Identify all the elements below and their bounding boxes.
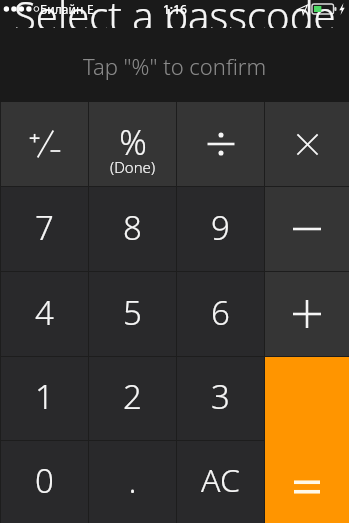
staticText: 9 [211,205,230,250]
button[interactable]: Plus [265,272,349,356]
staticText: Tap "%" to confirm [83,51,267,81]
staticText: 7 [35,205,54,250]
button[interactable]: 6 [177,272,264,356]
button[interactable]: 7 [1,187,88,271]
staticText: 1 [35,374,54,419]
staticText: Билайн [40,1,84,17]
staticText: 5 [123,290,142,335]
staticText: (Done) [110,157,156,177]
button[interactable]: 4 [1,272,88,356]
button[interactable]: 5 [89,272,176,356]
button[interactable]: . [89,441,176,523]
button[interactable]: 9 [177,187,264,271]
button[interactable]: 3 [177,357,264,440]
staticText: 2 [123,374,142,419]
button[interactable]: 1 [1,357,88,440]
staticText: AC [201,458,240,502]
button[interactable]: Plus minus [1,102,88,186]
staticText: E [87,1,94,17]
button[interactable]: 8 [89,187,176,271]
staticText: 4 [35,290,54,335]
button[interactable]: AC [177,441,264,523]
staticText: 0 [35,458,54,503]
button[interactable]: % [89,102,176,186]
staticText: 6 [211,290,230,335]
button[interactable]: Divide [177,102,264,186]
button[interactable]: 2 [89,357,176,440]
staticText: % [119,119,147,165]
staticText: Select a passcode [14,0,336,28]
staticText: 1:16 [163,1,187,17]
button[interactable]: Multiply [265,102,349,186]
staticText: 3 [211,374,230,419]
staticText: 8 [123,205,142,250]
button[interactable]: Minus [265,187,349,271]
staticText: . [128,458,137,503]
button[interactable]: Equals [265,357,349,523]
button[interactable]: 0 [1,441,88,523]
